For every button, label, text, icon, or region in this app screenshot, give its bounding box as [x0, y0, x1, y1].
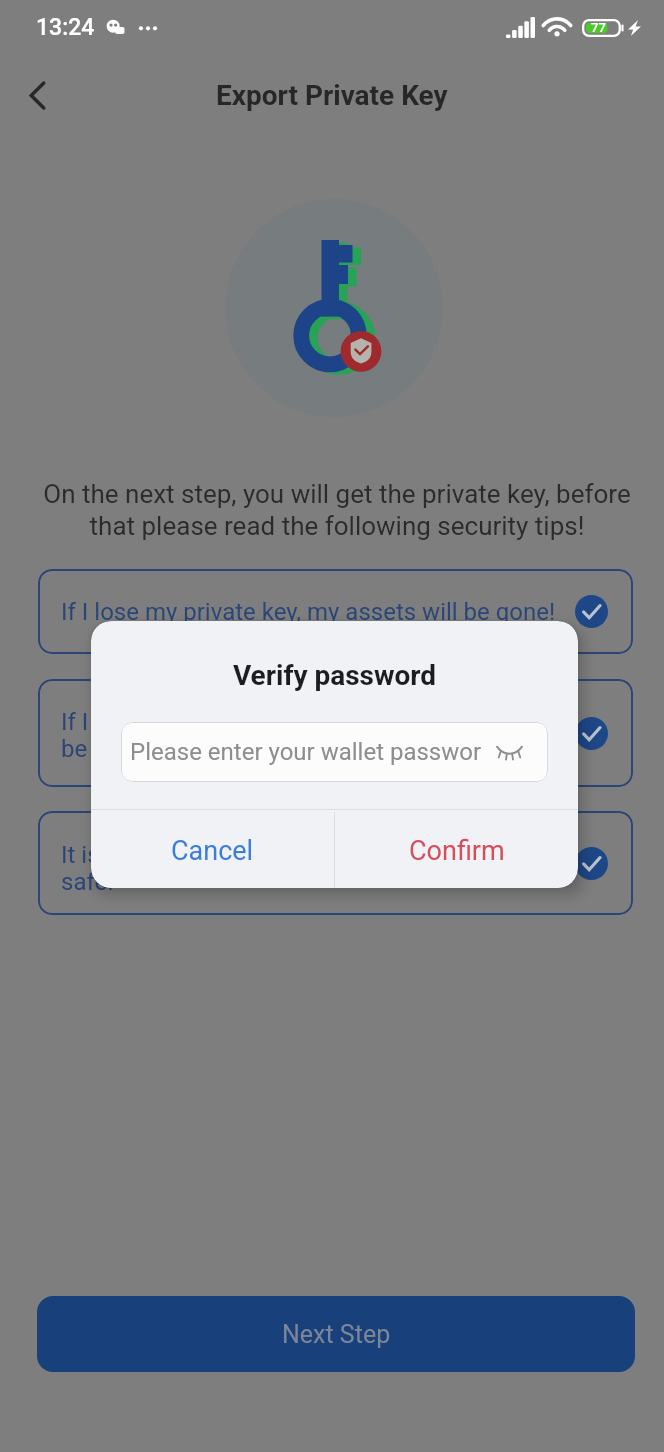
staticText: Next Step [282, 1320, 391, 1349]
button[interactable]: Back [7, 65, 67, 125]
staticText: Verify password [91, 659, 578, 692]
button[interactable]: If I lose my private key, my assets will… [38, 569, 633, 654]
button[interactable]: If I leak my private key to others, my a… [38, 679, 633, 787]
button[interactable]: Next Step [37, 1296, 635, 1372]
staticText: If I lose my private key, my assets will… [61, 598, 563, 626]
other: Show password [497, 746, 522, 759]
staticText: On the next step, you will get the priva… [35, 479, 639, 542]
button[interactable]: Cancel [91, 812, 334, 888]
button[interactable]: Confirm [335, 812, 578, 888]
staticText: 13:24 [36, 14, 95, 41]
staticText: Confirm [409, 835, 505, 867]
staticText: Cancel [171, 835, 254, 867]
staticText: 77 [591, 20, 606, 35]
staticText: Export Private Key [216, 79, 448, 112]
staticText: Please enter your wallet passwor [130, 738, 497, 766]
staticText: If I leak my private key to others, my a… [61, 708, 563, 762]
staticText: It is my responsibility to keep my priva… [61, 841, 563, 895]
button[interactable]: It is my responsibility to keep my priva… [38, 811, 633, 915]
button[interactable]: Please enter your wallet passwor [121, 722, 548, 782]
